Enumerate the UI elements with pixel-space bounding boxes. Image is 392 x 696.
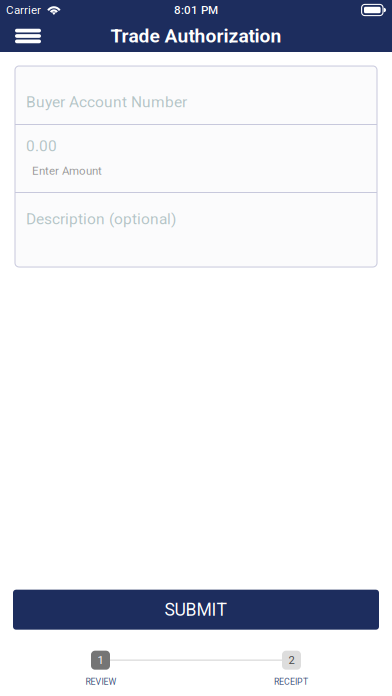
button[interactable]: SUBMIT (13, 590, 379, 630)
staticText: SUBMIT (164, 599, 227, 620)
staticText: Carrier (6, 3, 41, 17)
staticText: Trade Authorization (110, 25, 281, 47)
staticText: REVIEW (85, 677, 116, 687)
staticText: 2 (288, 654, 294, 667)
staticText: 8:01 PM (174, 3, 218, 17)
staticText: Enter Amount (32, 164, 102, 177)
staticText: Description (optional) (26, 210, 176, 228)
staticText: 1 (97, 654, 103, 667)
staticText: Buyer Account Number (26, 93, 187, 111)
button[interactable]: Menu (0, 20, 56, 52)
staticText: 0.00 (26, 137, 57, 155)
staticText: RECEIPT (274, 677, 308, 687)
